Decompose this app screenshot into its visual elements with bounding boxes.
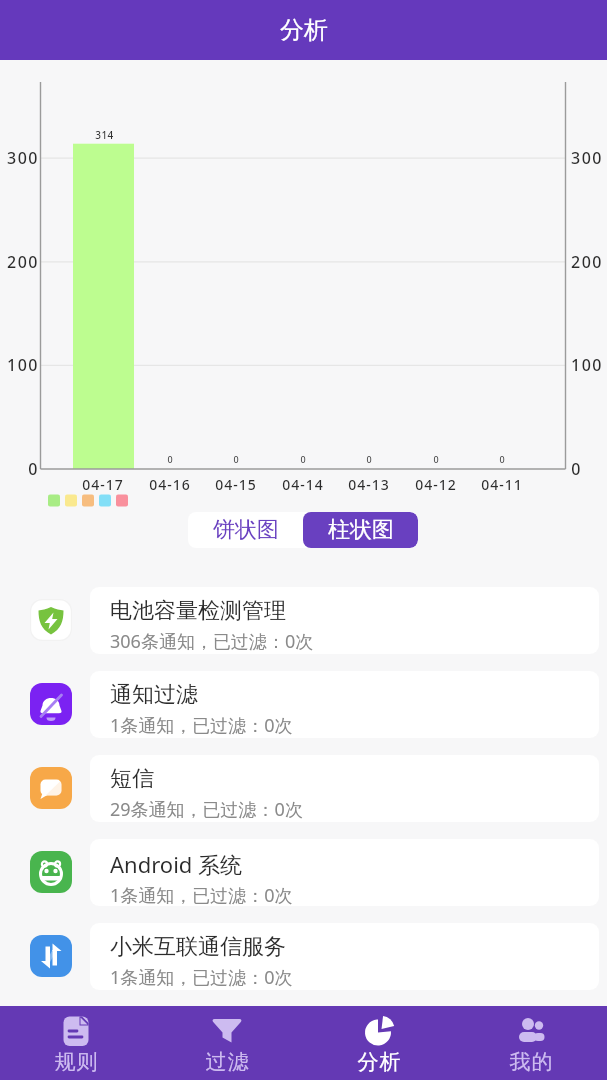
staticText: 1条通知，已过滤：0次 <box>110 965 293 990</box>
staticText: 电池容量检测管理 <box>110 597 286 625</box>
staticText: 314 <box>95 128 114 141</box>
staticText: 04-13 <box>348 475 390 494</box>
button[interactable]: 分析 <box>303 1006 455 1080</box>
button[interactable]: 柱状图 <box>303 512 418 548</box>
staticText: 1条通知，已过滤：0次 <box>110 883 293 906</box>
staticText: 306条通知，已过滤：0次 <box>110 629 314 654</box>
staticText: 04-17 <box>82 475 124 494</box>
staticText: 规则 <box>54 1049 98 1075</box>
button[interactable]: Android 系统 <box>90 839 599 906</box>
staticText: 分析 <box>357 1049 401 1075</box>
button[interactable]: 通知过滤 <box>90 671 599 738</box>
staticText: 柱状图 <box>328 516 394 544</box>
staticText: 0 <box>366 453 372 465</box>
staticText: 短信 <box>110 765 154 793</box>
staticText: 饼状图 <box>213 516 279 544</box>
staticText: 04-11 <box>481 475 523 494</box>
staticText: 0 <box>571 458 582 480</box>
staticText: 100 <box>7 354 39 376</box>
button[interactable]: 规则 <box>0 1006 151 1080</box>
staticText: 04-15 <box>215 475 257 494</box>
button[interactable]: 短信 <box>90 755 599 822</box>
staticText: Android 系统 <box>110 849 243 879</box>
button[interactable]: 电池容量检测管理 <box>90 587 599 654</box>
staticText: 过滤 <box>205 1049 249 1075</box>
staticText: 200 <box>7 251 39 273</box>
staticText: 200 <box>571 251 603 273</box>
staticText: 0 <box>233 453 239 465</box>
staticText: 0 <box>167 453 173 465</box>
staticText: 0 <box>28 458 39 480</box>
staticText: 0 <box>433 453 439 465</box>
staticText: 0 <box>499 453 505 465</box>
staticText: 04-12 <box>415 475 457 494</box>
staticText: 我的 <box>509 1049 553 1075</box>
staticText: 小米互联通信服务 <box>110 933 286 961</box>
staticText: 通知过滤 <box>110 681 198 709</box>
staticText: 300 <box>7 147 39 169</box>
staticText: 04-16 <box>149 475 191 494</box>
staticText: 0 <box>300 453 306 465</box>
button[interactable]: 小米互联通信服务 <box>90 923 599 990</box>
button[interactable]: 我的 <box>455 1006 607 1080</box>
staticText: 300 <box>571 147 603 169</box>
button[interactable]: 饼状图 <box>188 512 303 548</box>
staticText: 1条通知，已过滤：0次 <box>110 713 293 738</box>
staticText: 分析 <box>280 15 328 45</box>
staticText: 29条通知，已过滤：0次 <box>110 797 303 822</box>
button[interactable]: 过滤 <box>151 1006 303 1080</box>
staticText: 100 <box>571 354 603 376</box>
staticText: 04-14 <box>282 475 324 494</box>
